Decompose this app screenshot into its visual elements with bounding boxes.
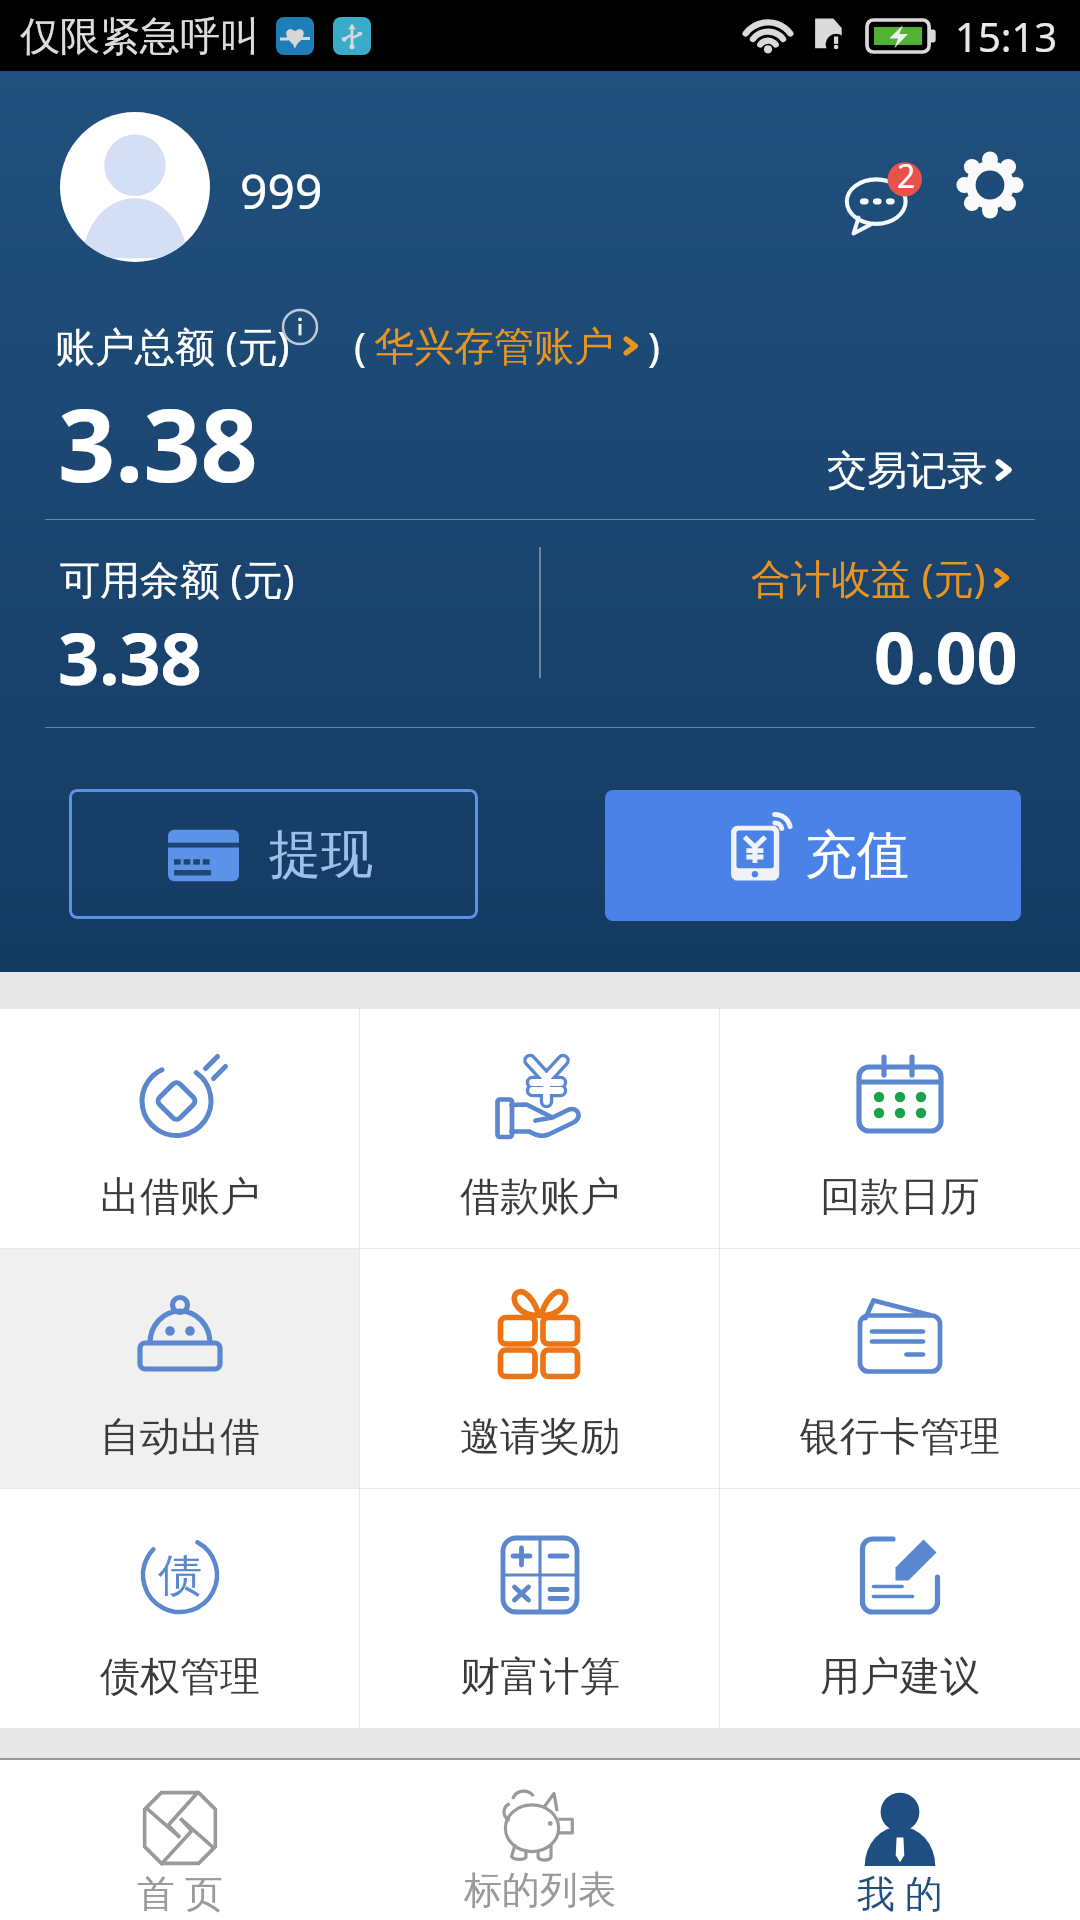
staticText: 用户建议 [820,1651,980,1701]
button[interactable]: 交易记录 [827,445,1021,495]
staticText: 自动出借 [100,1411,260,1461]
button[interactable]: ( [354,319,660,373]
button[interactable]: Avatar [60,112,210,262]
button[interactable]: 我 的 [720,1760,1080,1920]
staticText: 债 [158,1548,202,1603]
staticText: 标的列表 [464,1866,616,1914]
button[interactable]: 回款日历 [720,1009,1080,1248]
staticText: 债权管理 [100,1651,260,1701]
button[interactable]: 邀请奖励 [360,1249,720,1488]
staticText: 财富计算 [460,1651,620,1701]
button[interactable]: 财富计算 [360,1489,720,1728]
staticText: 可用余额 (元) [60,551,295,606]
staticText: 回款日历 [820,1171,980,1221]
staticText: 2 [897,154,916,192]
button[interactable]: 标的列表 [360,1760,720,1920]
button[interactable]: 出借账户 [0,1009,360,1248]
staticText: 交易记录 [827,445,987,495]
staticText: 15:13 [955,9,1058,63]
button[interactable]: 自动出借 [0,1249,360,1488]
staticText: 3.38 [58,375,258,511]
staticText: 银行卡管理 [800,1411,1000,1461]
button[interactable]: 提现 [69,789,478,919]
staticText: 华兴存管账户 [374,321,614,371]
staticText: 充值 [805,823,909,889]
staticText: 仅限紧急呼叫 [20,11,260,61]
button[interactable]: 用户建议 [720,1489,1080,1728]
staticText: 邀请奖励 [460,1411,620,1461]
staticText: 0.00 [874,607,1018,705]
staticText: 借款账户 [460,1171,620,1221]
button[interactable]: 首 页 [0,1760,360,1920]
staticText: ) [648,319,660,373]
button[interactable]: 借款账户 [360,1009,720,1248]
staticText: 我 的 [857,1866,943,1918]
staticText: ( [354,319,366,373]
staticText: 出借账户 [100,1171,260,1221]
staticText: 999 [240,158,323,223]
button[interactable]: 充值 [605,790,1021,921]
button[interactable]: 合计收益 (元) [751,550,1018,605]
button[interactable]: Messages [838,155,922,239]
staticText: 合计收益 (元) [751,550,986,605]
staticText: 首 页 [137,1866,223,1918]
staticText: 账户总额 (元) [55,318,290,373]
staticText: 3.38 [58,608,202,706]
button[interactable]: 银行卡管理 [720,1249,1080,1488]
staticText: 提现 [269,822,373,888]
button[interactable]: 债 [0,1489,360,1728]
button[interactable]: Settings [958,153,1022,217]
